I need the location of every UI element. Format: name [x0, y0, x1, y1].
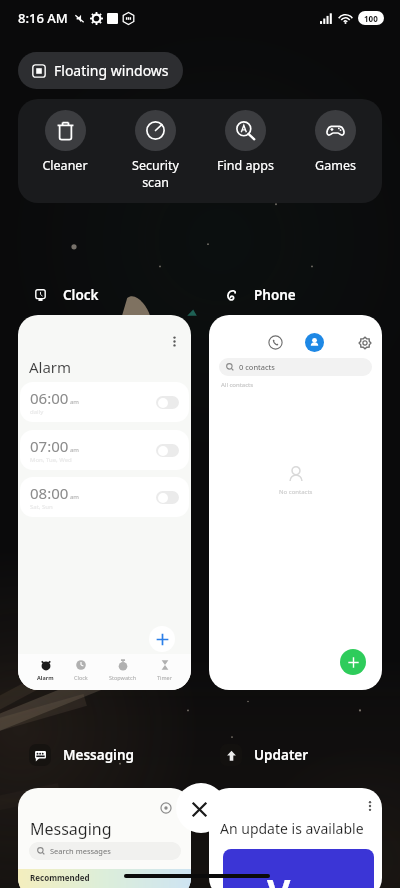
staticText: daily	[30, 408, 44, 416]
button[interactable]: Clock	[72, 659, 90, 681]
button[interactable]: Close	[176, 783, 226, 833]
button[interactable]: Messaging	[29, 744, 134, 766]
staticText: 8:16 AM	[18, 9, 68, 27]
staticText: Clock	[63, 286, 99, 304]
staticText: Cleaner	[42, 157, 88, 174]
button[interactable]: Messaging	[18, 788, 191, 888]
button[interactable]: Settings	[356, 334, 373, 351]
button[interactable]: Alarm	[35, 659, 56, 681]
button[interactable]: 07:00	[20, 430, 189, 470]
button[interactable]: Toggle alarm	[156, 444, 179, 457]
staticText: Security scan	[132, 157, 179, 190]
staticText: Games	[315, 157, 356, 174]
staticText: Updater	[254, 746, 309, 764]
button[interactable]: Floating windows	[18, 52, 183, 89]
staticText: Alarm	[37, 674, 54, 681]
button[interactable]: Timer	[155, 659, 174, 681]
button[interactable]: Games	[292, 110, 378, 174]
button[interactable]: Search messages	[29, 842, 181, 860]
staticText: am	[70, 446, 79, 454]
staticText: Search messages	[50, 846, 111, 856]
button[interactable]: Toggle alarm	[156, 491, 179, 504]
staticText: No contacts	[279, 488, 313, 496]
staticText: Floating windows	[54, 61, 169, 80]
staticText: 07:00	[30, 436, 69, 456]
button[interactable]: Toggle alarm	[156, 396, 179, 409]
staticText: Messaging	[30, 818, 112, 840]
staticText: 0 contacts	[239, 362, 275, 372]
button[interactable]: Add alarm	[149, 626, 175, 652]
staticText: V	[267, 868, 291, 888]
button[interactable]: Stopwatch	[107, 659, 139, 681]
staticText: Mon, Tue, Wed	[30, 456, 72, 464]
staticText: Messaging	[63, 746, 134, 764]
staticText: 100	[364, 13, 378, 24]
button[interactable]: Cleaner	[22, 110, 108, 174]
button[interactable]: 0 contacts	[219, 358, 372, 376]
staticText: am	[70, 493, 79, 501]
staticText: Stopwatch	[109, 674, 137, 681]
button[interactable]: Find apps	[202, 110, 288, 174]
button[interactable]: Alarm	[18, 315, 191, 690]
staticText: am	[70, 398, 79, 406]
staticText: Find apps	[217, 157, 274, 174]
button[interactable]: Phone	[220, 284, 296, 306]
staticText: Timer	[157, 674, 172, 681]
button[interactable]: Security scan	[112, 110, 198, 190]
button[interactable]: Updater	[220, 744, 309, 766]
button[interactable]: Clock	[29, 284, 99, 306]
staticText: Alarm	[29, 357, 72, 377]
button[interactable]: 06:00	[20, 382, 189, 422]
staticText: All contacts	[221, 381, 254, 389]
staticText: Sat, Sun	[30, 503, 53, 511]
staticText: 08:00	[30, 483, 69, 503]
staticText: An update is available	[220, 819, 364, 838]
button[interactable]: Contacts	[305, 333, 324, 352]
button[interactable]: Add contact	[340, 649, 366, 675]
staticText: 06:00	[30, 388, 69, 408]
button[interactable]: Recents	[209, 315, 382, 690]
staticText: Clock	[74, 674, 88, 681]
staticText: Phone	[254, 286, 296, 304]
staticText: Recommended	[30, 872, 90, 883]
button[interactable]: 08:00	[20, 477, 189, 517]
button[interactable]: Recents	[267, 334, 284, 351]
button[interactable]: An update is available	[209, 788, 382, 888]
